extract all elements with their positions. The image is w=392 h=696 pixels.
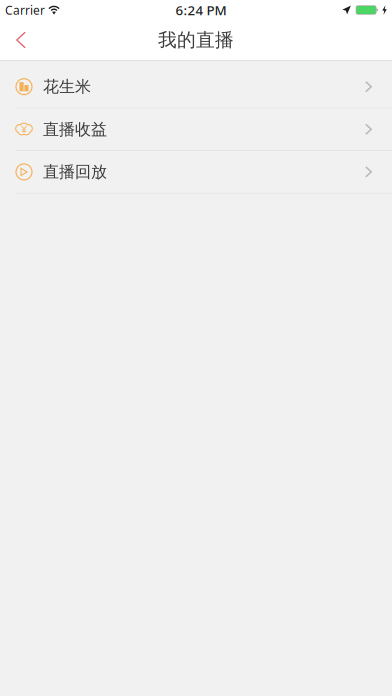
staticText: 直播收益 <box>43 119 107 139</box>
button[interactable]: 花生米 <box>0 66 392 108</box>
button[interactable]: 直播收益 <box>0 108 392 151</box>
button[interactable]: 直播回放 <box>0 151 392 194</box>
staticText: Carrier <box>5 2 45 18</box>
staticText: 我的直播 <box>158 28 234 51</box>
staticText: 花生米 <box>43 77 91 97</box>
staticText: 6:24 PM <box>175 1 226 19</box>
button[interactable]: Back <box>0 20 54 60</box>
staticText: 直播回放 <box>43 162 107 182</box>
